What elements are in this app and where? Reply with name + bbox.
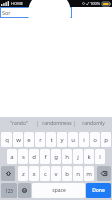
button[interactable]: m (84, 166, 94, 181)
staticText: a (10, 153, 14, 161)
button[interactable]: q (1, 132, 12, 147)
staticText: l (99, 153, 101, 161)
button[interactable]: f (40, 149, 50, 164)
staticText: s (22, 153, 25, 161)
staticText: randomly (82, 120, 105, 127)
button[interactable]: b (62, 166, 72, 181)
button[interactable]: Shift (1, 166, 15, 181)
button[interactable]: 123 (1, 183, 17, 198)
button[interactable]: d (29, 149, 39, 164)
staticText: i (83, 136, 85, 144)
staticText: j (77, 153, 79, 161)
button[interactable]: randomly (75, 117, 112, 130)
staticText: q (5, 136, 9, 144)
staticText: n (76, 170, 80, 178)
button[interactable]: h (62, 149, 72, 164)
staticText: w (16, 136, 21, 144)
button[interactable]: e (24, 132, 34, 147)
staticText: b (65, 170, 69, 178)
button[interactable]: z (18, 166, 28, 181)
staticText: e (27, 136, 31, 144)
staticText: x (32, 170, 36, 178)
button[interactable]: v (51, 166, 61, 181)
button[interactable]: r (35, 132, 45, 147)
staticText: 100% (90, 1, 101, 6)
staticText: Sor (2, 9, 11, 16)
button[interactable]: g (51, 149, 61, 164)
staticText: 123 (5, 188, 13, 194)
staticText: v (54, 170, 58, 178)
button[interactable]: Done (86, 183, 111, 198)
staticText: f (44, 153, 47, 161)
button[interactable]: Emoji keyboard (18, 183, 31, 198)
button[interactable]: p (101, 132, 111, 147)
staticText: u (71, 136, 75, 144)
button[interactable]: randomness (38, 117, 75, 130)
staticText: h (65, 153, 69, 161)
button[interactable]: i (79, 132, 89, 147)
button[interactable]: n (73, 166, 83, 181)
button[interactable]: j (73, 149, 83, 164)
staticText: d (32, 153, 36, 161)
staticText: space (52, 187, 66, 194)
button[interactable]: u (68, 132, 78, 147)
button[interactable]: y (57, 132, 67, 147)
button[interactable]: s (18, 149, 28, 164)
staticText: randomness (42, 120, 72, 127)
staticText: c (44, 170, 47, 178)
staticText: g (54, 153, 58, 161)
button[interactable]: o (90, 132, 100, 147)
other: Loading (28, 0, 71, 34)
staticText: r (39, 136, 42, 144)
staticText: o (93, 136, 97, 144)
button[interactable]: c (40, 166, 50, 181)
staticText: t (50, 136, 53, 144)
staticText: k (87, 153, 91, 161)
staticText: HOME (11, 1, 24, 6)
button[interactable]: a (7, 149, 17, 164)
button[interactable]: "rando" (0, 117, 38, 130)
button[interactable]: space (32, 183, 85, 198)
button[interactable]: t (46, 132, 56, 147)
staticText: y (60, 136, 64, 144)
button[interactable]: x (29, 166, 39, 181)
button[interactable]: l (95, 149, 105, 164)
staticText: z (22, 170, 25, 178)
button[interactable]: w (13, 132, 23, 147)
button[interactable]: Backspace (97, 166, 111, 181)
staticText: p (104, 136, 108, 144)
button[interactable]: Sor (0, 7, 72, 18)
staticText: Done (92, 187, 105, 194)
staticText: "rando" (10, 120, 28, 127)
button[interactable]: k (84, 149, 94, 164)
staticText: m (86, 170, 92, 178)
